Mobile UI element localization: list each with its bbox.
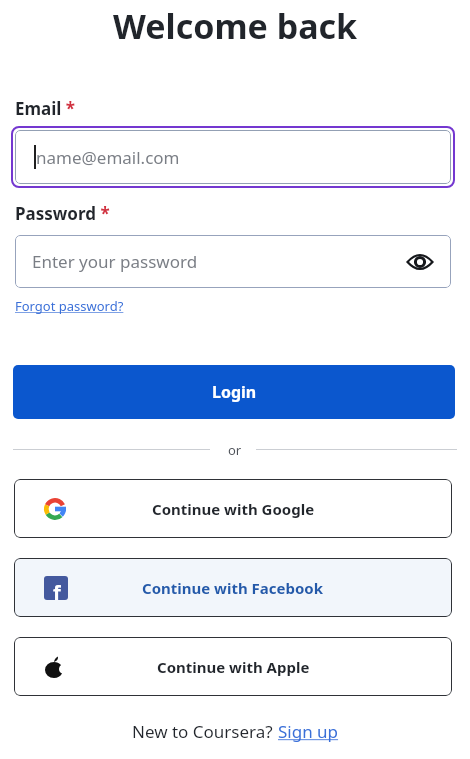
button[interactable]: Sign up [278,720,339,743]
button[interactable]: Continue with Facebook [14,558,452,617]
button[interactable]: Login [13,365,455,419]
staticText: f [53,579,61,600]
button[interactable]: Continue with Google [14,479,452,538]
button[interactable]: Enter your password [15,235,451,288]
staticText: Continue with Apple [157,657,310,677]
staticText: Welcome back [113,3,358,49]
staticText: Enter your password [32,250,198,273]
staticText: Login [212,381,257,403]
staticText: name@email.com [36,146,180,169]
staticText: Password * [15,202,110,225]
button[interactable]: Continue with Apple [14,637,452,696]
staticText: Continue with Facebook [142,578,324,598]
staticText: Continue with Google [152,499,315,519]
staticText: New to Coursera? [132,720,278,743]
staticText: Email * [15,97,76,120]
button[interactable]: Forgot password? [15,297,124,315]
button[interactable]: name@email.com [15,130,451,184]
staticText: or [228,441,242,459]
